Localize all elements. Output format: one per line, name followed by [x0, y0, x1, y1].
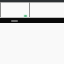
button[interactable]: Add — [24, 15, 27, 17]
